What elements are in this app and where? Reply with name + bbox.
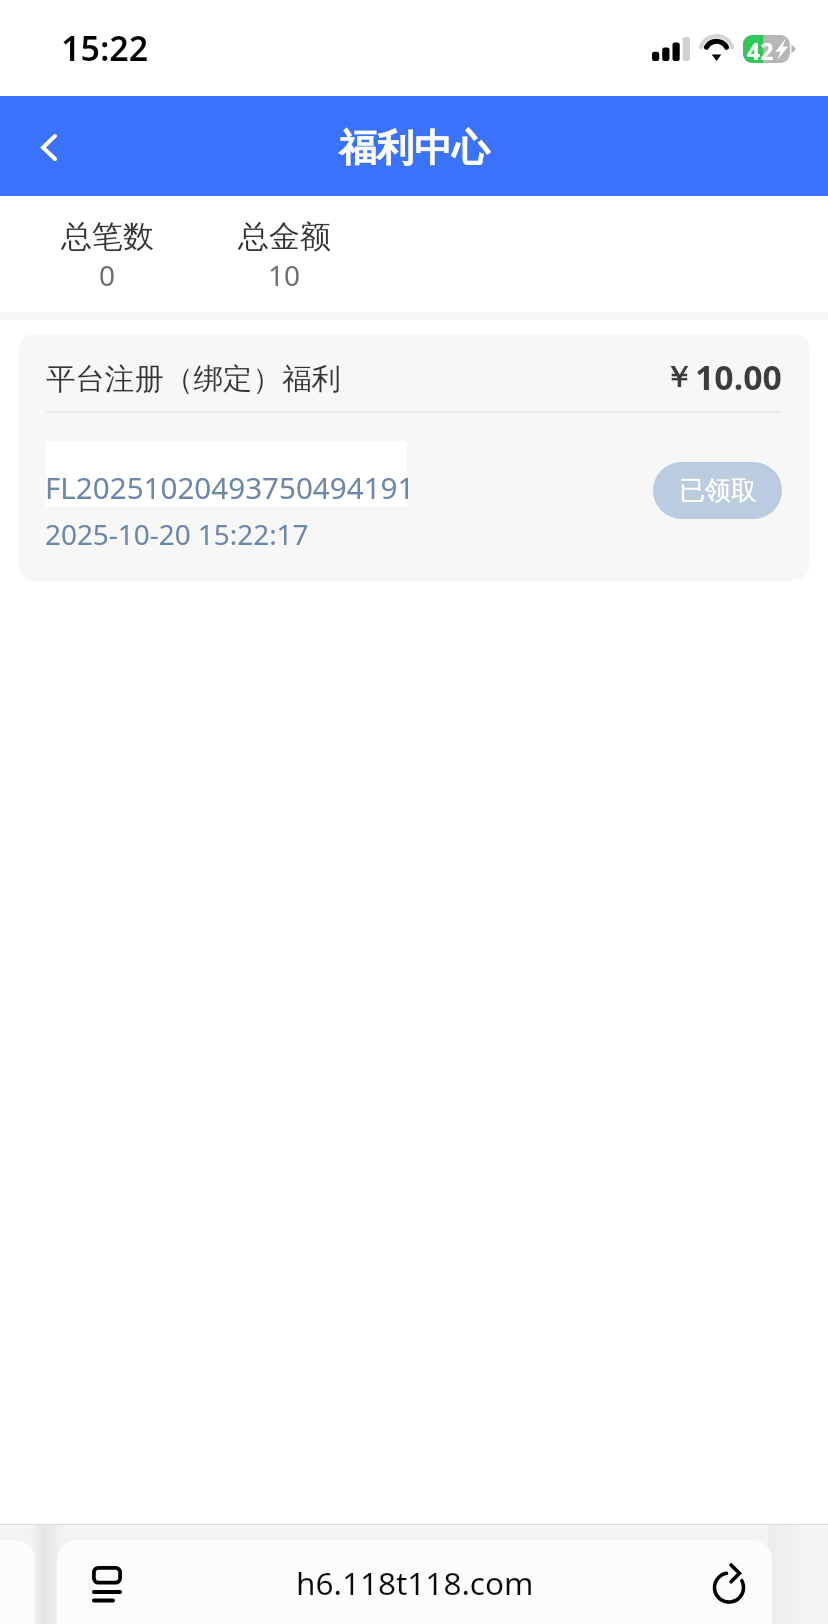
staticText: 已领取 [679, 474, 757, 507]
staticText: 0 [99, 256, 116, 294]
button[interactable]: Tabs [57, 1540, 167, 1624]
staticText: FL20251020493750494191 [45, 467, 415, 507]
button[interactable]: Reload [662, 1540, 772, 1624]
button[interactable]: Address bar [167, 1540, 662, 1624]
staticText: 总笔数 [61, 217, 154, 256]
staticText: 2025-10-20 15:22:17 [45, 515, 309, 553]
button[interactable]: Back [0, 96, 96, 196]
staticText: 15:22 [61, 25, 149, 71]
staticText: 福利中心 [339, 125, 490, 172]
button[interactable]: 已领取 [653, 462, 782, 519]
staticText: 平台注册（绑定）福利 [46, 361, 341, 398]
staticText: h6.118t118.com [296, 1561, 534, 1604]
staticText: 42 [747, 35, 774, 63]
staticText: 10.00 [695, 354, 782, 400]
staticText: ￥ [664, 359, 693, 396]
button[interactable]: 平台注册（绑定）福利 [19, 334, 809, 581]
staticText: 10 [268, 256, 301, 294]
staticText: 总金额 [238, 217, 331, 256]
